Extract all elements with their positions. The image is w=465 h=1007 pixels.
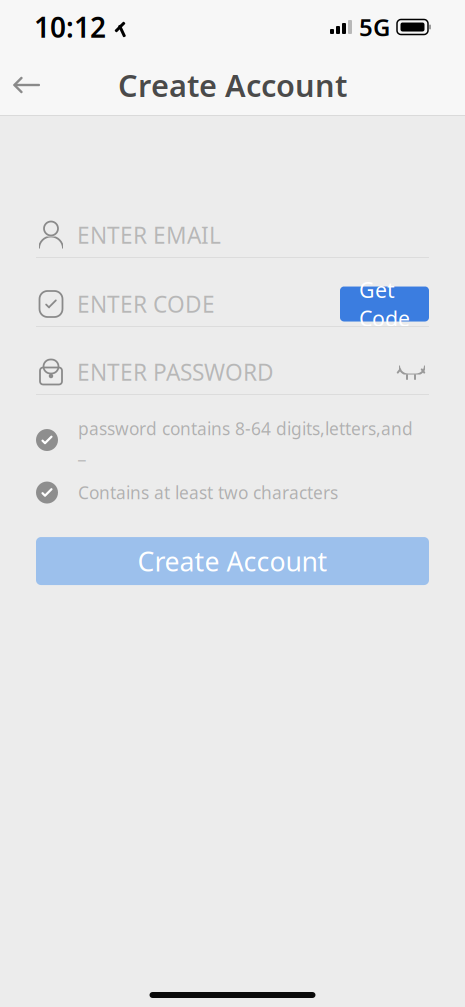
staticText: ENTER PASSWORD [77, 357, 274, 387]
staticText: Create Account [137, 543, 327, 579]
staticText: password contains 8-64 digits,letters,an… [78, 417, 413, 463]
button[interactable]: Create Account [36, 537, 429, 585]
button[interactable]: Show password [395, 357, 429, 387]
button[interactable]: Get Code [340, 286, 429, 321]
staticText: ENTER EMAIL [77, 220, 221, 250]
staticText: 5G [359, 11, 390, 43]
staticText: ENTER CODE [77, 289, 215, 319]
staticText: 10:12 [34, 8, 106, 46]
staticText: Contains at least two characters [78, 481, 338, 504]
staticText: Get Code [359, 276, 410, 332]
staticText: Create Account [118, 65, 347, 105]
button[interactable]: Back [0, 58, 54, 112]
